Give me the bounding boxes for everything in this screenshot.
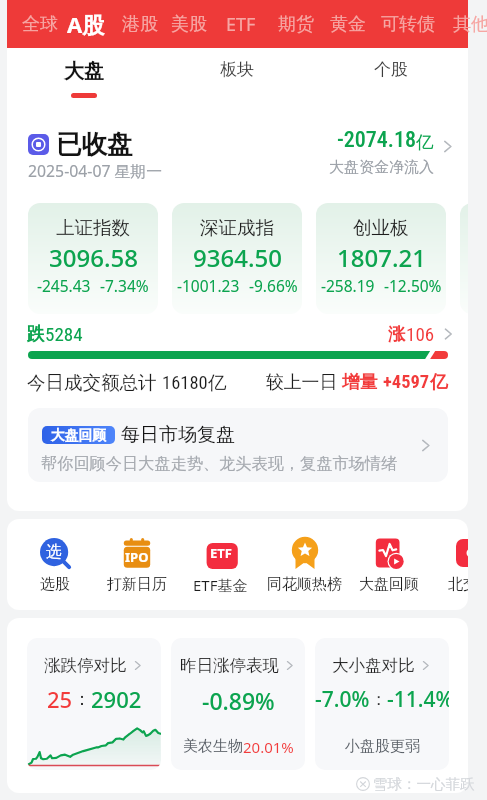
staticText: 帮你回顾今日大盘走势、龙头表现，复盘市场情绪 bbox=[41, 453, 398, 473]
staticText: 昨日涨停表现 bbox=[180, 655, 279, 676]
staticText: ETF基金 bbox=[193, 575, 248, 595]
staticText: -9.66% bbox=[249, 275, 298, 296]
button[interactable]: 板块 bbox=[160, 48, 314, 110]
staticText: -1001.23 bbox=[177, 275, 240, 296]
staticText: 20.01% bbox=[243, 737, 294, 757]
staticText: ETF bbox=[226, 12, 256, 37]
staticText: 深证成指 bbox=[200, 216, 274, 239]
staticText: 5284 bbox=[45, 323, 83, 345]
staticText: 港股 bbox=[122, 13, 158, 36]
staticText: 雪球：一心菲跃 bbox=[373, 775, 475, 793]
staticText: -245.43 bbox=[37, 275, 91, 296]
staticText: 每日市场复盘 bbox=[121, 423, 235, 447]
staticText: 选股 bbox=[40, 575, 70, 594]
staticText: 选 bbox=[46, 542, 62, 562]
staticText: ： bbox=[370, 689, 387, 710]
staticText: +4597 bbox=[383, 371, 430, 393]
staticText: 16180 bbox=[162, 372, 208, 394]
staticText: 美农生物 bbox=[183, 737, 243, 756]
button[interactable]: 美股 bbox=[164, 0, 214, 48]
staticText: 大盘资金净流入 bbox=[329, 158, 434, 177]
staticText: 3096.58 bbox=[49, 241, 138, 274]
button[interactable]: 可转债 bbox=[374, 0, 442, 48]
staticText: 亿 bbox=[416, 131, 434, 153]
staticText: 9364.50 bbox=[193, 241, 282, 274]
staticText: 黄金 bbox=[330, 13, 366, 36]
button[interactable]: 深证成指 bbox=[172, 203, 302, 314]
staticText: -258.19 bbox=[321, 275, 375, 296]
button[interactable]: 上证指数 bbox=[28, 203, 158, 314]
staticText: 同花顺热榜 bbox=[267, 575, 342, 594]
staticText: 其他 bbox=[453, 13, 487, 36]
staticText: 小盘股更弱 bbox=[345, 737, 420, 756]
button[interactable]: ETF bbox=[219, 0, 263, 48]
staticText: 2025-04-07 星期一 bbox=[28, 160, 162, 182]
staticText: ETF bbox=[210, 544, 232, 562]
button[interactable]: 大盘回顾 bbox=[347, 519, 430, 610]
staticText: 106 bbox=[406, 323, 435, 345]
button[interactable]: 选股 bbox=[13, 519, 96, 610]
staticText: 大盘 bbox=[64, 59, 104, 84]
button[interactable]: 黄金 bbox=[323, 0, 373, 48]
button[interactable]: 其他 bbox=[446, 0, 487, 48]
staticText: 期货 bbox=[278, 13, 314, 36]
staticText: 亿 bbox=[208, 371, 227, 394]
staticText: 涨跌停对比 bbox=[44, 655, 127, 676]
staticText: -7.34% bbox=[100, 275, 149, 296]
staticText: 个股 bbox=[374, 59, 408, 80]
staticText: A股 bbox=[67, 9, 105, 39]
button[interactable]: 大小盘对比 bbox=[315, 638, 449, 770]
button[interactable]: 全球 bbox=[15, 0, 65, 48]
button[interactable]: 同花顺热榜 bbox=[263, 519, 346, 610]
staticText: -2074.18 bbox=[337, 127, 416, 153]
staticText: 今日成交额总计 bbox=[27, 369, 162, 394]
staticText: IPO bbox=[125, 548, 149, 566]
staticText: 亿 bbox=[430, 371, 448, 393]
button[interactable]: 昨日涨停表现 bbox=[171, 638, 305, 770]
button[interactable]: A股 bbox=[60, 0, 112, 48]
staticText: 全球 bbox=[22, 13, 58, 36]
button[interactable]: 港股 bbox=[115, 0, 165, 48]
button[interactable] bbox=[460, 203, 468, 314]
button[interactable]: 北交所 bbox=[429, 519, 468, 610]
staticText: 25 bbox=[47, 684, 73, 714]
staticText: 跌 bbox=[27, 323, 45, 345]
other: ETF基金 bbox=[206, 538, 236, 568]
staticText: ： bbox=[73, 688, 91, 711]
staticText: -12.50% bbox=[384, 275, 442, 296]
other: 大盘回顾 bbox=[374, 538, 404, 568]
button[interactable]: 打新日历 bbox=[95, 519, 178, 610]
button[interactable]: 创业板 bbox=[316, 203, 446, 314]
staticText: 北交所 bbox=[448, 575, 468, 594]
other: 北交所 bbox=[456, 538, 468, 568]
staticText: 2902 bbox=[91, 684, 142, 714]
button[interactable]: ETF基金 bbox=[179, 519, 262, 610]
staticText: 美股 bbox=[171, 13, 207, 36]
staticText: 板块 bbox=[220, 59, 254, 80]
staticText: -0.89% bbox=[202, 685, 275, 716]
other: 选股 bbox=[40, 538, 70, 568]
other: 同花顺热榜 bbox=[290, 538, 320, 568]
button[interactable]: 涨跌停对比 bbox=[27, 638, 161, 770]
other: 打新日历 bbox=[122, 538, 152, 568]
button[interactable]: 期货 bbox=[271, 0, 321, 48]
staticText: 创业板 bbox=[353, 216, 409, 239]
staticText: 大盘回顾 bbox=[359, 575, 419, 594]
staticText: -11.4% bbox=[387, 685, 449, 714]
staticText: 上证指数 bbox=[56, 216, 130, 239]
staticText: 1807.21 bbox=[337, 241, 426, 274]
staticText: 涨 bbox=[388, 323, 406, 345]
button[interactable]: 大盘 bbox=[7, 48, 160, 110]
staticText: 增量 bbox=[342, 369, 383, 393]
staticText: 大小盘对比 bbox=[332, 655, 415, 676]
staticText: -7.0% bbox=[315, 685, 370, 714]
staticText: 较上一日 bbox=[266, 369, 342, 393]
staticText: 打新日历 bbox=[107, 575, 167, 594]
button[interactable]: 个股 bbox=[314, 48, 468, 110]
staticText: 大盘回顾 bbox=[51, 427, 107, 444]
staticText: 可转债 bbox=[381, 13, 435, 36]
staticText: 已收盘 bbox=[56, 128, 133, 160]
button[interactable]: 大盘回顾 bbox=[28, 408, 448, 482]
